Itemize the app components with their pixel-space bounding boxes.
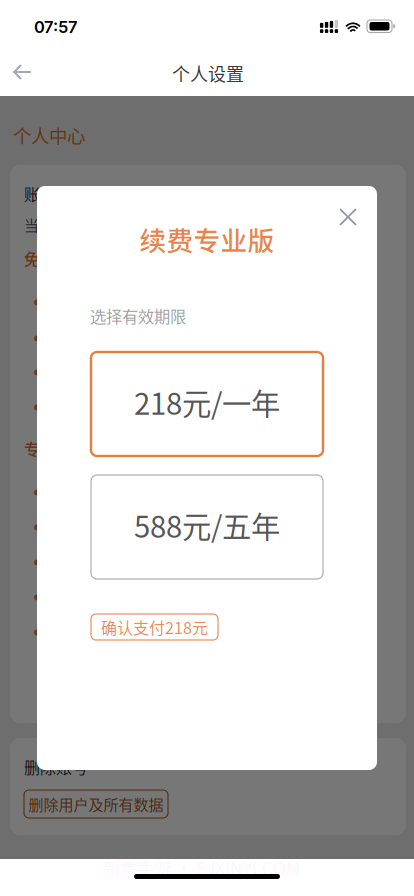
staticText: 个人设置 xyxy=(172,60,244,86)
staticText: 确认支付218元 xyxy=(101,615,208,639)
staticText: 普通客服支持 xyxy=(49,362,133,383)
staticText: 当前版本：免费版 xyxy=(24,214,144,236)
staticText: 全部报表导出 xyxy=(49,622,133,643)
staticText: 高级筛选与排序 xyxy=(49,517,147,538)
button[interactable]: 588元/五年 xyxy=(91,475,323,579)
staticText: 续费专业版 xyxy=(139,220,274,258)
staticText: 专业版权益 xyxy=(24,437,104,460)
staticText: 选择有效期限 xyxy=(90,304,186,328)
button[interactable]: 218元/一年 xyxy=(91,352,323,456)
button[interactable]: 确认支付218元 xyxy=(91,614,218,640)
staticText: 588元/五年 xyxy=(134,504,280,546)
staticText: 删除账号 xyxy=(24,755,88,778)
staticText: 基础报表导出 xyxy=(49,397,133,418)
staticText: 07:57 xyxy=(34,17,77,37)
staticText: 账号类型 xyxy=(24,182,88,205)
staticText: 基础数据查询 xyxy=(49,292,133,313)
staticText: 无限次数据查询 xyxy=(49,482,147,503)
staticText: 删除用户及所有数据 xyxy=(28,793,163,815)
staticText: 优先客服支持 xyxy=(49,552,133,573)
staticText: 免费版权益 xyxy=(24,247,104,270)
button[interactable]: Back xyxy=(0,50,44,94)
button[interactable]: 删除用户及所有数据 xyxy=(24,790,168,818)
button[interactable]: Close xyxy=(328,197,368,237)
staticText: 新意手游 · SJXINYI.COM xyxy=(103,855,300,880)
staticText: 218元/一年 xyxy=(134,381,280,423)
staticText: 个人中心 xyxy=(13,122,85,149)
